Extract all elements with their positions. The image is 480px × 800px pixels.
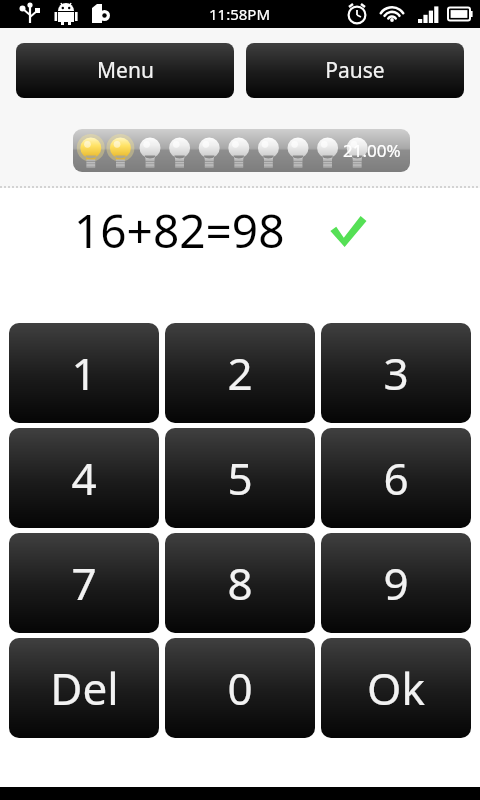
- staticText: Del: [50, 658, 119, 718]
- staticText: 21.00%: [343, 139, 401, 162]
- button[interactable]: 5: [165, 428, 315, 528]
- staticText: 16+82=98: [74, 199, 285, 262]
- button[interactable]: Del: [9, 638, 159, 738]
- other: Correct: [327, 210, 369, 252]
- staticText: 11:58PM: [209, 4, 271, 24]
- staticText: 4: [71, 448, 97, 508]
- button[interactable]: 9: [321, 533, 471, 633]
- button[interactable]: 2: [165, 323, 315, 423]
- staticText: 1: [71, 343, 97, 403]
- staticText: Ok: [367, 658, 425, 718]
- staticText: 5: [227, 448, 253, 508]
- staticText: 9: [383, 553, 409, 613]
- staticText: 2: [227, 343, 253, 403]
- staticText: 8: [227, 553, 253, 613]
- button[interactable]: 3: [321, 323, 471, 423]
- button[interactable]: 4: [9, 428, 159, 528]
- button[interactable]: 0: [165, 638, 315, 738]
- button[interactable]: 7: [9, 533, 159, 633]
- button[interactable]: 8: [165, 533, 315, 633]
- staticText: Pause: [325, 56, 385, 85]
- staticText: 3: [383, 343, 409, 403]
- button[interactable]: 1: [9, 323, 159, 423]
- button[interactable]: Pause: [246, 43, 464, 98]
- staticText: 6: [383, 448, 409, 508]
- button[interactable]: Menu: [16, 43, 234, 98]
- button[interactable]: 6: [321, 428, 471, 528]
- button[interactable]: Ok: [321, 638, 471, 738]
- staticText: 0: [227, 658, 253, 718]
- staticText: Menu: [97, 56, 154, 85]
- staticText: 7: [71, 553, 97, 613]
